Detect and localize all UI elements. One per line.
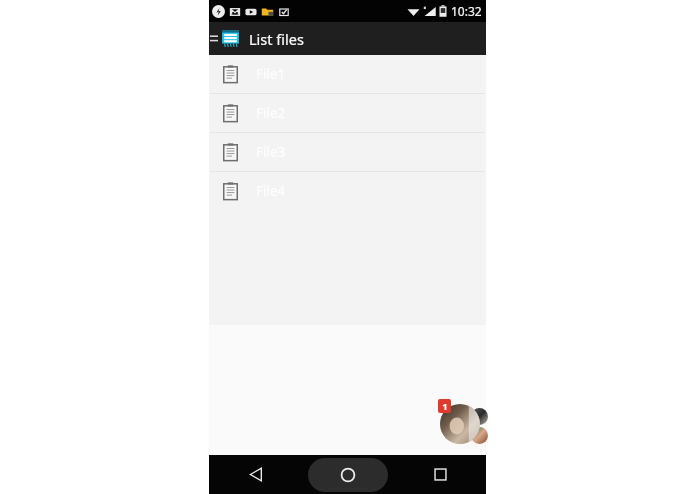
button[interactable]: Back	[209, 455, 302, 494]
button[interactable]: File2	[209, 94, 486, 132]
button[interactable]: File1	[209, 55, 486, 93]
button[interactable]: File3	[209, 133, 486, 171]
staticText: File2	[256, 104, 286, 122]
staticText: 10:32	[451, 3, 482, 19]
staticText: File4	[256, 182, 286, 200]
button[interactable]: Home	[302, 455, 394, 494]
button[interactable]: File4	[209, 172, 486, 210]
button[interactable]: Recent apps	[394, 455, 486, 494]
staticText: List files	[249, 29, 304, 49]
staticText: File3	[256, 143, 286, 161]
staticText: File1	[256, 65, 286, 83]
button[interactable]: Open navigation drawer	[209, 22, 218, 55]
button[interactable]: Chat head	[471, 427, 488, 444]
button[interactable]: Open Messenger chat	[440, 404, 480, 444]
button[interactable]: Chat head	[471, 408, 488, 425]
staticText: 1	[442, 400, 448, 413]
